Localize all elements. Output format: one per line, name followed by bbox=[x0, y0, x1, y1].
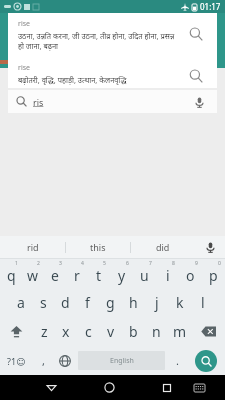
staticText: did bbox=[156, 241, 170, 253]
staticText: 4 bbox=[81, 260, 84, 267]
button[interactable]: Change language bbox=[53, 346, 76, 375]
staticText: u bbox=[140, 266, 149, 285]
staticText: x bbox=[62, 322, 70, 341]
button[interactable]: z bbox=[33, 317, 55, 346]
button[interactable]: h bbox=[122, 288, 145, 317]
button[interactable]: Voice input bbox=[195, 236, 225, 258]
staticText: 5 bbox=[103, 260, 106, 267]
button[interactable]: Shift bbox=[0, 317, 33, 346]
staticText: o bbox=[186, 266, 195, 285]
staticText: d bbox=[61, 293, 70, 312]
button[interactable]: . bbox=[167, 346, 187, 375]
staticText: 6 bbox=[126, 260, 129, 267]
staticText: 8 bbox=[172, 260, 175, 267]
button[interactable]: d bbox=[54, 288, 76, 317]
staticText: 3 bbox=[59, 260, 62, 267]
staticText: 0 bbox=[218, 260, 221, 267]
staticText: rise bbox=[18, 63, 30, 73]
button[interactable]: Search bbox=[195, 350, 217, 372]
button[interactable]: c bbox=[77, 317, 99, 346]
staticText: 7 bbox=[149, 260, 152, 267]
button[interactable]: b bbox=[122, 317, 145, 346]
staticText: उठना, उन्नति करना, जी उठना, तीव्र होना, … bbox=[18, 31, 181, 51]
staticText: n bbox=[152, 322, 161, 341]
staticText: , bbox=[42, 353, 45, 368]
staticText: 1 bbox=[15, 260, 18, 267]
staticText: l bbox=[201, 293, 205, 312]
button[interactable]: 0 bbox=[202, 259, 225, 288]
button[interactable]: a bbox=[10, 288, 32, 317]
button[interactable]: n bbox=[145, 317, 168, 346]
staticText: a bbox=[17, 293, 25, 312]
button[interactable]: ?1☺ bbox=[0, 346, 33, 375]
button[interactable]: k bbox=[168, 288, 191, 317]
staticText: y bbox=[118, 266, 126, 285]
button[interactable]: 5 bbox=[88, 259, 110, 288]
button[interactable]: 8 bbox=[156, 259, 179, 288]
staticText: z bbox=[41, 322, 48, 341]
button[interactable]: rise bbox=[8, 13, 217, 57]
button[interactable]: j bbox=[145, 288, 168, 317]
button[interactable]: rise bbox=[8, 57, 217, 88]
staticText: f bbox=[85, 293, 90, 312]
staticText: m bbox=[173, 322, 187, 341]
button[interactable]: f bbox=[76, 288, 99, 317]
button[interactable]: 2 bbox=[22, 259, 44, 288]
staticText: rid bbox=[27, 241, 39, 253]
button[interactable]: Recents bbox=[151, 375, 183, 400]
staticText: 9 bbox=[195, 260, 198, 267]
button[interactable]: x bbox=[55, 317, 77, 346]
button[interactable]: Search rise bbox=[181, 63, 211, 88]
staticText: c bbox=[85, 322, 92, 341]
button[interactable]: 6 bbox=[110, 259, 133, 288]
staticText: s bbox=[40, 293, 47, 312]
button[interactable]: Voice search bbox=[189, 92, 209, 112]
staticText: h bbox=[129, 293, 138, 312]
button[interactable]: g bbox=[99, 288, 122, 317]
staticText: rise bbox=[18, 19, 30, 29]
staticText: g bbox=[106, 293, 115, 312]
staticText: English bbox=[110, 356, 134, 366]
staticText: p bbox=[209, 266, 218, 285]
button[interactable]: ris bbox=[8, 90, 217, 113]
staticText: ?1☺ bbox=[7, 355, 26, 367]
button[interactable]: 4 bbox=[66, 259, 88, 288]
button[interactable]: this bbox=[66, 236, 130, 258]
button[interactable]: 3 bbox=[44, 259, 66, 288]
button[interactable]: English bbox=[78, 351, 165, 370]
button[interactable]: Search rise bbox=[181, 19, 211, 49]
staticText: 01:17 bbox=[200, 1, 221, 12]
staticText: r bbox=[74, 266, 80, 285]
staticText: ris bbox=[33, 96, 44, 108]
staticText: q bbox=[7, 266, 16, 285]
button[interactable]: Back bbox=[35, 375, 67, 400]
button[interactable]: Keyboard layout bbox=[183, 375, 215, 400]
button[interactable]: Backspace bbox=[191, 317, 225, 346]
staticText: b bbox=[129, 322, 138, 341]
staticText: w bbox=[27, 266, 39, 285]
button[interactable]: 1 bbox=[0, 259, 22, 288]
button[interactable]: did bbox=[131, 236, 195, 258]
staticText: i bbox=[166, 266, 170, 285]
button[interactable]: 9 bbox=[179, 259, 202, 288]
staticText: . bbox=[176, 353, 179, 368]
button[interactable]: v bbox=[99, 317, 122, 346]
staticText: k bbox=[176, 293, 184, 312]
button[interactable]: , bbox=[33, 346, 53, 375]
button[interactable]: s bbox=[32, 288, 54, 317]
button[interactable]: m bbox=[168, 317, 191, 346]
button[interactable]: rid bbox=[0, 236, 65, 258]
staticText: t bbox=[96, 266, 102, 285]
staticText: बढ़ोतरी, वृद्धि, पहाड़ी, उत्थान, केलनवृद… bbox=[18, 75, 127, 85]
staticText: 2 bbox=[37, 260, 40, 267]
staticText: this bbox=[90, 241, 106, 253]
button[interactable]: l bbox=[191, 288, 214, 317]
button[interactable]: Home bbox=[93, 375, 125, 400]
staticText: e bbox=[51, 266, 59, 285]
staticText: j bbox=[155, 293, 159, 312]
button[interactable]: 7 bbox=[133, 259, 156, 288]
staticText: v bbox=[107, 322, 115, 341]
